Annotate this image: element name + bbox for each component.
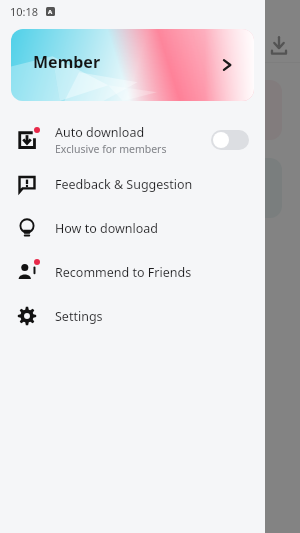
button[interactable]: Recommend to Friends xyxy=(0,250,265,294)
staticText: Exclusive for members xyxy=(55,142,167,156)
staticText: Recommend to Friends xyxy=(55,264,192,281)
staticText: Download xyxy=(160,100,235,120)
button[interactable]: Auto download xyxy=(0,118,265,162)
button[interactable]: Settings xyxy=(0,294,265,338)
button[interactable]: How to download xyxy=(0,206,265,250)
staticText: A xyxy=(48,8,53,16)
staticText: Feedback & Suggestion xyxy=(55,176,193,193)
staticText: Settings xyxy=(55,308,103,325)
button[interactable]: Auto download toggle xyxy=(211,130,249,150)
button[interactable]: Member xyxy=(11,29,254,101)
button[interactable]: Feedback & Suggestion xyxy=(0,162,265,206)
button[interactable]: Download xyxy=(266,32,292,58)
staticText: Auto download xyxy=(55,124,145,141)
staticText: How to download xyxy=(55,220,159,237)
staticText: Member xyxy=(33,51,101,73)
staticText: 10:18 xyxy=(10,4,39,19)
